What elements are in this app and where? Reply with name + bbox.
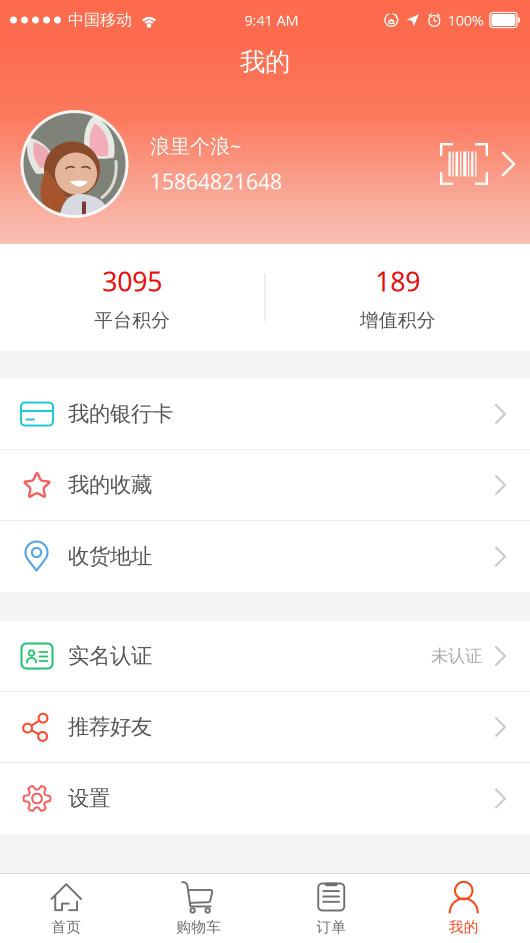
staticText: 实名认证 — [68, 643, 152, 669]
button[interactable]: 收货地址 — [0, 521, 530, 592]
staticText: 3095 — [102, 263, 162, 299]
button[interactable]: 推荐好友 — [0, 692, 530, 763]
staticText: 收货地址 — [68, 543, 152, 570]
button[interactable]: 浪里个浪~ — [0, 111, 530, 216]
staticText: 增值积分 — [360, 309, 436, 332]
staticText: 浪里个浪~ — [150, 133, 241, 159]
staticText: 189 — [375, 263, 420, 299]
button[interactable]: 我的 — [397, 873, 530, 943]
staticText: 购物车 — [176, 918, 221, 936]
staticText: 15864821648 — [150, 167, 282, 195]
staticText: 首页 — [51, 918, 81, 936]
staticText: 订单 — [316, 918, 346, 936]
button[interactable]: 189 — [265, 263, 530, 332]
button[interactable]: 3095 — [0, 263, 264, 332]
staticText: 我的 — [449, 918, 479, 936]
button[interactable]: 我的收藏 — [0, 450, 530, 521]
staticText: 平台积分 — [94, 309, 170, 332]
button[interactable]: 购物车 — [132, 873, 265, 943]
button[interactable]: 实名认证 — [0, 621, 530, 692]
staticText: 设置 — [68, 785, 110, 812]
staticText: 推荐好友 — [68, 714, 152, 740]
button[interactable]: 设置 — [0, 763, 530, 834]
staticText: 中国移动 — [68, 10, 132, 30]
staticText: 我的收藏 — [68, 472, 152, 498]
staticText: 9:41 AM — [244, 10, 298, 30]
staticText: 100% — [448, 10, 484, 30]
staticText: 我的银行卡 — [68, 401, 173, 427]
button[interactable]: 首页 — [0, 873, 132, 943]
button[interactable]: 订单 — [265, 873, 397, 943]
staticText: 我的 — [240, 46, 290, 77]
staticText: 未认证 — [431, 645, 482, 667]
button[interactable]: 我的银行卡 — [0, 379, 530, 450]
